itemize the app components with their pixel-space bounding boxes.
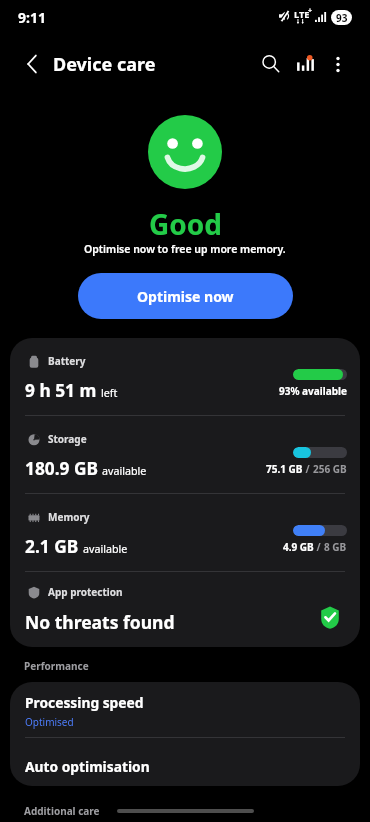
staticText: 75.1 GB bbox=[266, 462, 303, 476]
staticText: 2.1 GB bbox=[25, 535, 79, 559]
button[interactable]: Back bbox=[14, 46, 50, 82]
staticText: + bbox=[308, 6, 313, 16]
staticText: 4.9 GB bbox=[283, 540, 314, 554]
staticText: 93 bbox=[336, 11, 348, 25]
staticText: Battery bbox=[48, 354, 86, 368]
staticText: App protection bbox=[48, 585, 123, 599]
staticText: Memory bbox=[48, 510, 90, 524]
staticText: 9:11 bbox=[18, 8, 46, 27]
staticText: Additional care bbox=[24, 804, 100, 818]
button[interactable]: Storage bbox=[10, 416, 360, 493]
staticText: left bbox=[101, 386, 118, 401]
staticText: Auto optimisation bbox=[25, 757, 150, 776]
button[interactable]: Processing speed bbox=[10, 682, 360, 737]
staticText: 93% available bbox=[279, 384, 347, 398]
staticText: No threats found bbox=[25, 610, 175, 634]
staticText: Device care bbox=[53, 52, 156, 77]
staticText: LTE bbox=[294, 8, 310, 21]
staticText: Optimise now to free up more memory. bbox=[84, 242, 286, 256]
staticText: Good bbox=[149, 205, 222, 243]
staticText: / bbox=[303, 462, 313, 476]
staticText: Optimise now bbox=[137, 287, 234, 306]
staticText: available bbox=[102, 464, 147, 479]
staticText: Optimised bbox=[25, 715, 74, 729]
staticText: 8 GB bbox=[324, 540, 347, 554]
button[interactable]: More options bbox=[320, 46, 356, 82]
button[interactable]: App protection bbox=[10, 572, 360, 647]
staticText: Storage bbox=[48, 432, 87, 446]
button[interactable]: Optimise now bbox=[78, 273, 293, 319]
staticText: Processing speed bbox=[25, 693, 144, 712]
staticText: available bbox=[83, 542, 128, 557]
button[interactable]: Auto optimisation bbox=[10, 738, 360, 786]
button[interactable]: Diagnostics bbox=[283, 46, 319, 82]
staticText: Performance bbox=[24, 659, 89, 673]
staticText: / bbox=[314, 540, 324, 554]
staticText: 180.9 GB bbox=[25, 457, 98, 481]
button[interactable]: Search bbox=[246, 46, 282, 82]
staticText: 9 h 51 m bbox=[25, 379, 97, 403]
button[interactable]: Memory bbox=[10, 494, 360, 571]
staticText: 256 GB bbox=[313, 462, 347, 476]
button[interactable]: Battery bbox=[10, 338, 360, 415]
